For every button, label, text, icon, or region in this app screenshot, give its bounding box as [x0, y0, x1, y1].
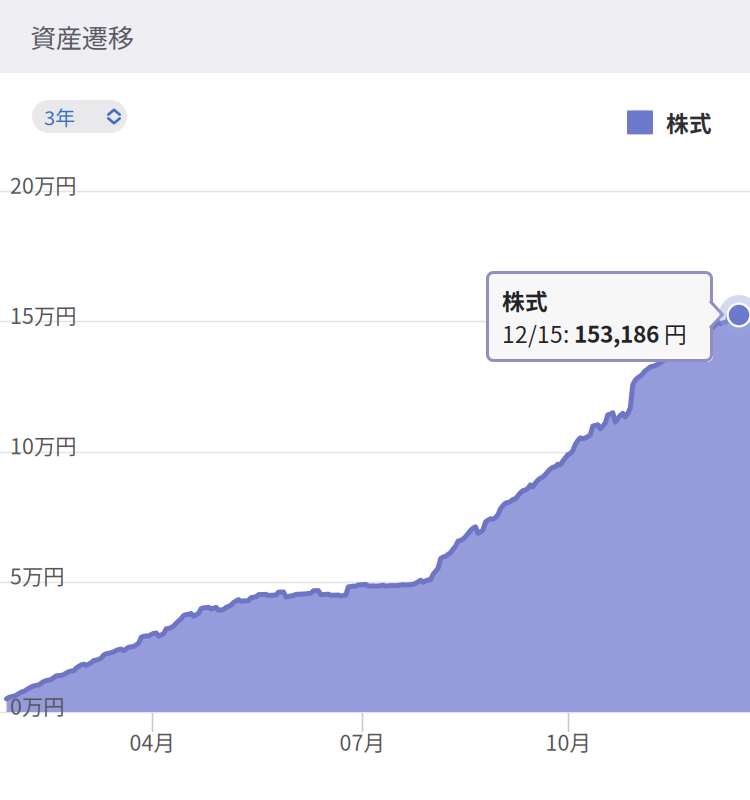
staticText: 5万円 — [10, 560, 64, 591]
button[interactable]: 3年 — [32, 100, 127, 133]
staticText: 株式 — [666, 106, 712, 139]
staticText: 20万円 — [10, 169, 76, 200]
staticText: 株式 — [502, 284, 548, 317]
staticText: 12/15: 153,186 円 — [502, 317, 687, 349]
staticText: 15万円 — [10, 299, 76, 330]
staticText: 資産遷移 — [30, 18, 134, 55]
staticText: 04月 — [129, 726, 174, 757]
staticText: 10万円 — [10, 429, 76, 460]
staticText: 0万円 — [10, 690, 64, 721]
staticText: 10月 — [545, 726, 590, 757]
staticText: 3年 — [44, 102, 75, 131]
staticText: 07月 — [339, 726, 384, 757]
